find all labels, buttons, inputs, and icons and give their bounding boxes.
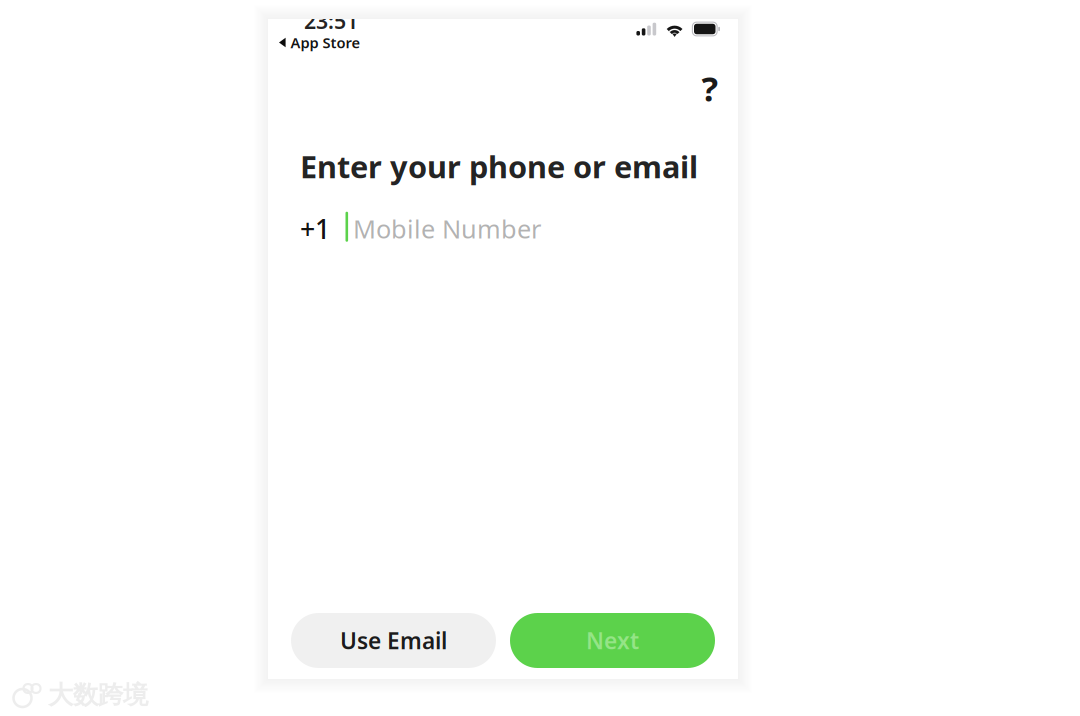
staticText: Use Email (340, 625, 447, 655)
staticText: App Store (291, 33, 361, 52)
button[interactable]: Next (510, 613, 715, 668)
staticText: ? (701, 65, 718, 111)
staticText: Enter your phone or email (300, 146, 698, 187)
staticText: Mobile Number (353, 212, 541, 245)
staticText: +1 (300, 211, 330, 246)
button[interactable]: +1 (268, 213, 738, 245)
staticText: 大数跨境 (48, 679, 148, 710)
button[interactable]: Use Email (291, 613, 496, 668)
staticText: Next (586, 625, 639, 655)
button[interactable]: App Store (268, 33, 361, 52)
staticText: 23:51 (304, 7, 358, 35)
button[interactable]: Help (687, 65, 733, 111)
